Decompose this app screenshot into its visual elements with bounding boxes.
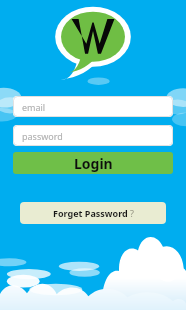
button[interactable]: Login (13, 152, 173, 174)
staticText: password (22, 130, 63, 142)
button[interactable]: email (13, 96, 173, 117)
staticText: email (22, 101, 46, 113)
button[interactable]: Forget Password ? (20, 202, 166, 224)
button[interactable]: password (13, 125, 173, 146)
staticText: Login (74, 154, 113, 173)
other: App logo (54, 6, 132, 80)
staticText: Forget Password ? (53, 207, 134, 219)
